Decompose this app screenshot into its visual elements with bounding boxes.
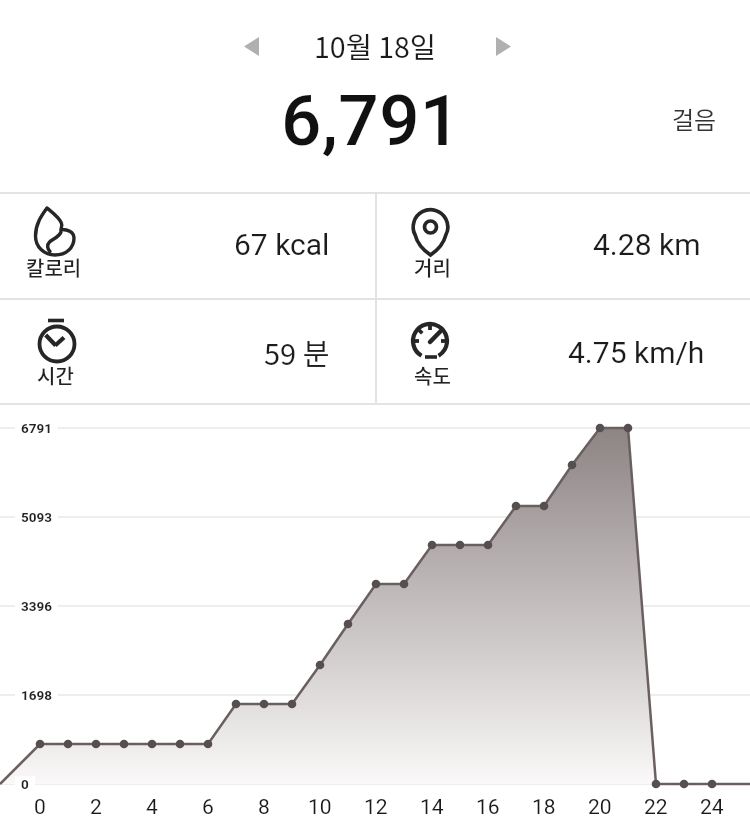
staticText: 6791 — [21, 420, 52, 436]
staticText: 14 — [420, 795, 444, 820]
staticText: 5093 — [21, 509, 52, 525]
staticText: 12 — [364, 795, 388, 820]
button[interactable] — [234, 28, 268, 64]
staticText: 24 — [700, 795, 724, 820]
staticText: 67 kcal — [234, 227, 330, 262]
staticText: 10 — [308, 795, 332, 820]
staticText: 4.28 km — [593, 227, 701, 262]
staticText: 0 — [21, 776, 29, 792]
staticText: 18 — [532, 795, 556, 820]
staticText: 22 — [644, 795, 668, 820]
staticText: 10월 18일 — [314, 25, 437, 66]
button[interactable] — [486, 28, 520, 64]
staticText: 4 — [146, 795, 158, 820]
staticText: 8 — [258, 795, 270, 820]
staticText: 1698 — [21, 687, 52, 703]
staticText: 칼로리 — [26, 253, 82, 282]
staticText: 시간 — [37, 361, 74, 390]
staticText: 3396 — [21, 598, 52, 614]
staticText: 6 — [202, 795, 214, 820]
staticText: 2 — [90, 795, 102, 820]
staticText: 20 — [588, 795, 612, 820]
staticText: 거리 — [414, 253, 451, 282]
staticText: 0 — [34, 795, 46, 820]
staticText: 6,791 — [281, 79, 462, 162]
staticText: 16 — [476, 795, 500, 820]
staticText: 걸음 — [672, 101, 717, 136]
staticText: 59 분 — [264, 331, 330, 373]
staticText: 4.75 km/h — [568, 335, 705, 370]
staticText: 속도 — [414, 361, 451, 390]
